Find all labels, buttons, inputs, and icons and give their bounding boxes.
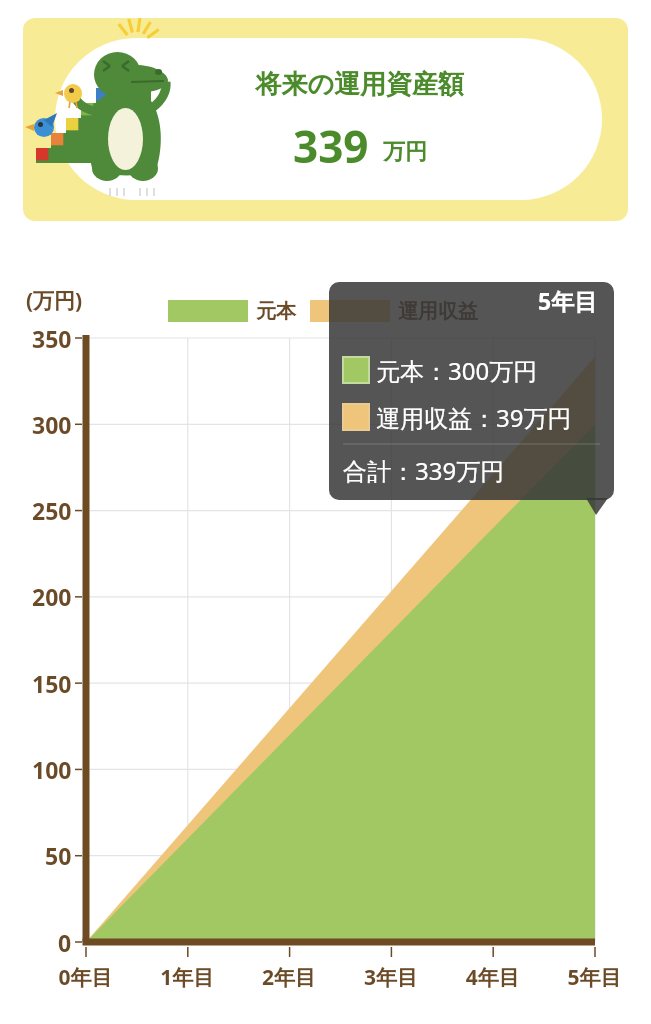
button[interactable]: 将来の運用資産額 339万円 グラフ [0, 0, 651, 1024]
